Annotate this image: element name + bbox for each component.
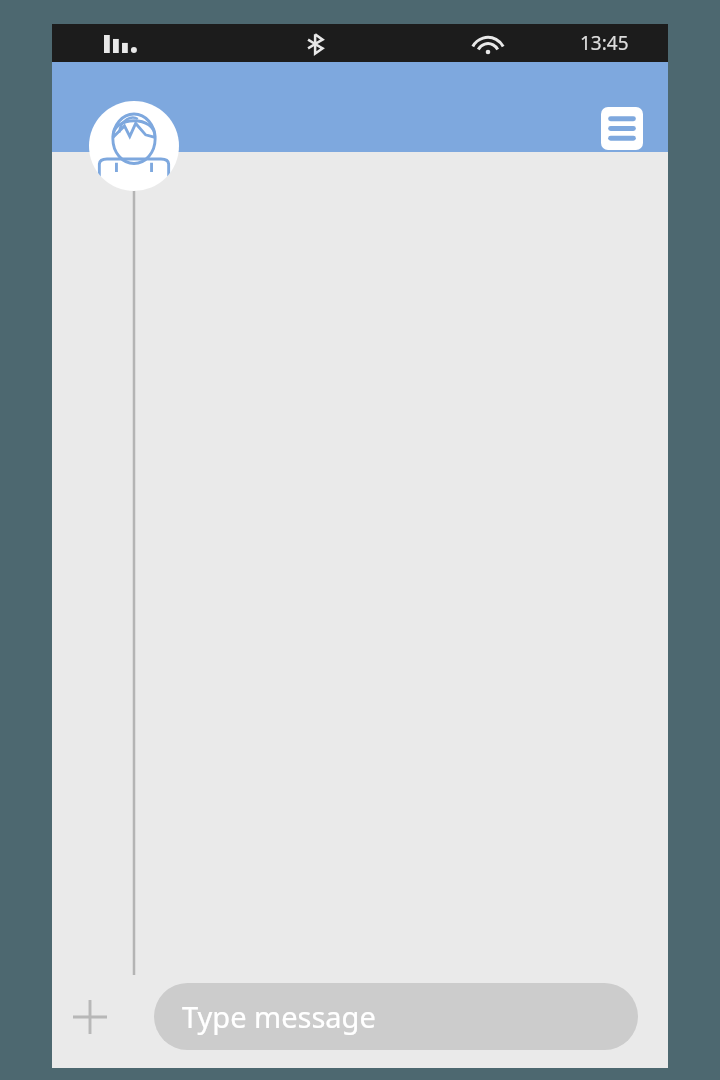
staticText: Type message (182, 997, 376, 1036)
button[interactable]: Type message (154, 983, 638, 1050)
button[interactable]: Contact avatar (89, 101, 179, 191)
button[interactable]: Menu (601, 107, 643, 150)
button[interactable]: Add attachment (68, 995, 112, 1039)
staticText: 13:45 (580, 30, 629, 56)
